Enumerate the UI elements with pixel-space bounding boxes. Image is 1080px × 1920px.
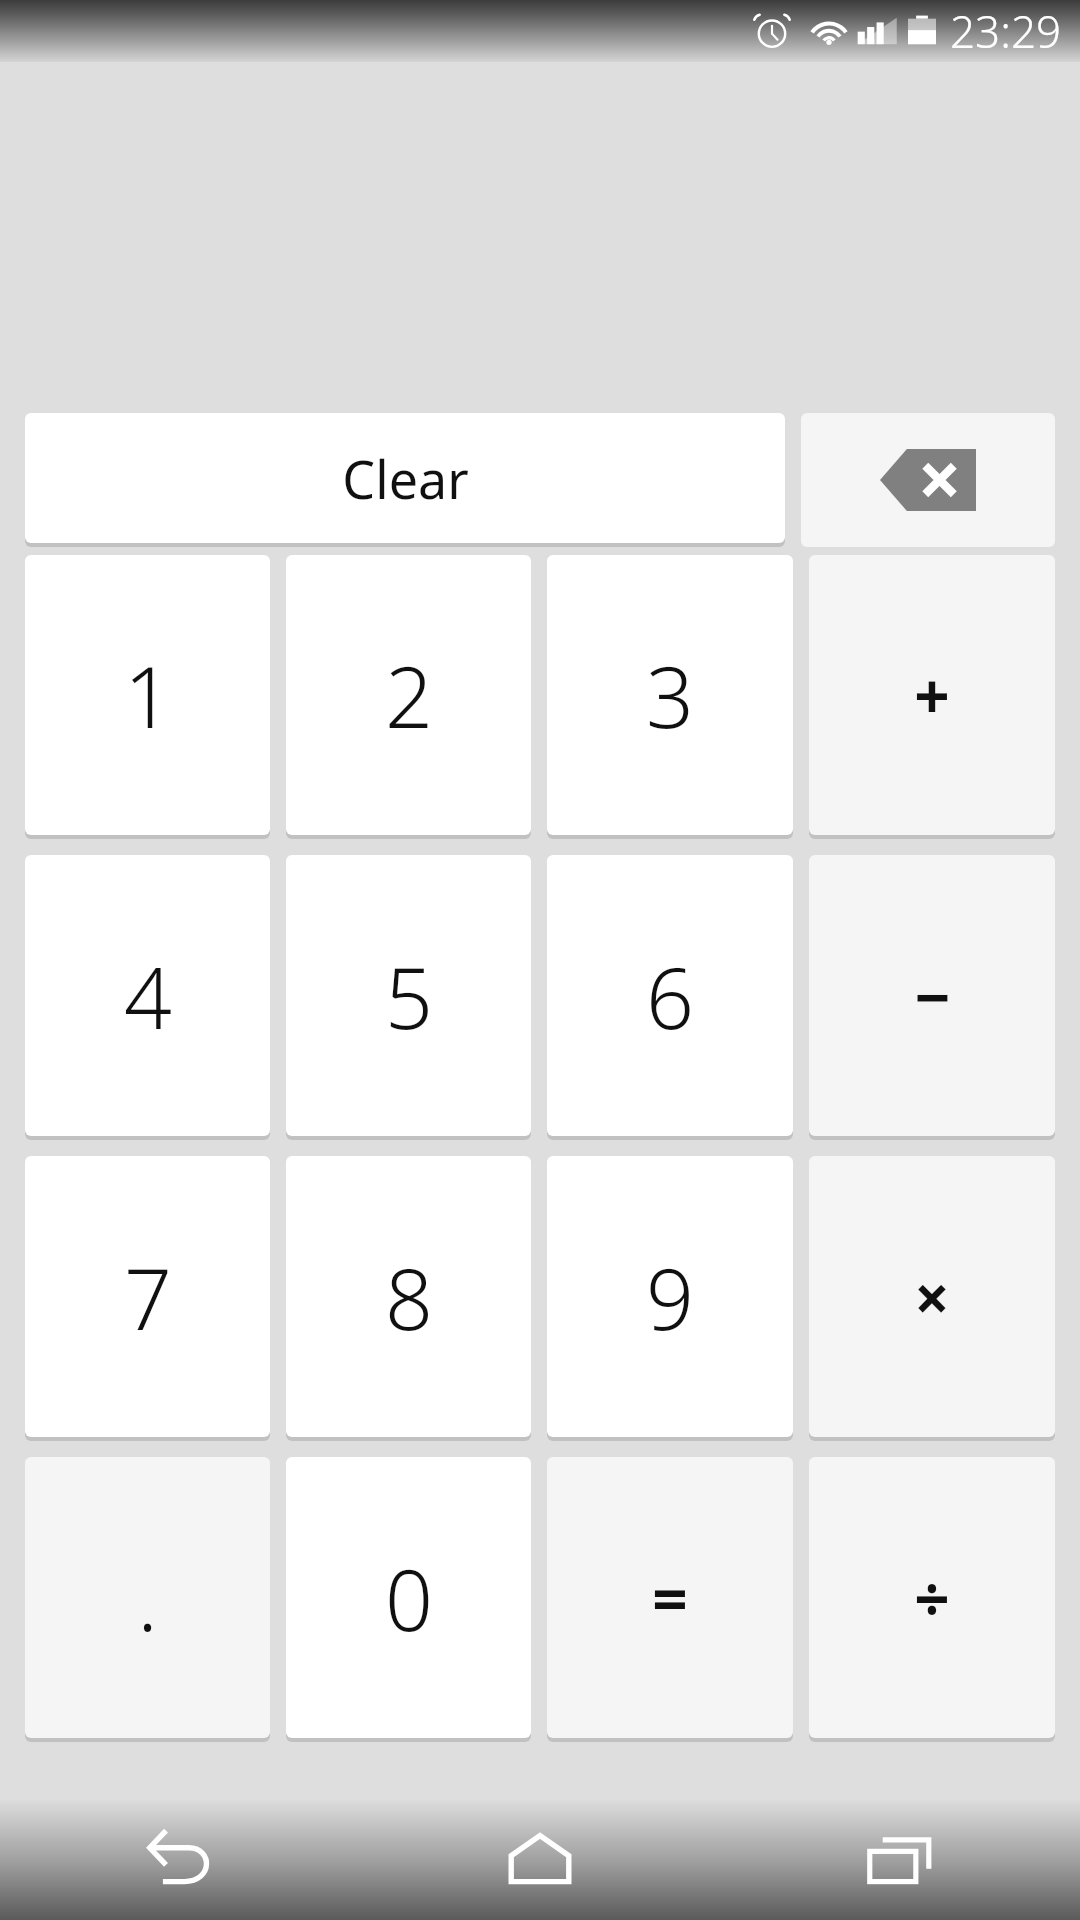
staticText: 5 (385, 939, 433, 1053)
staticText: 9 (646, 1240, 694, 1354)
button[interactable]: + (809, 555, 1055, 835)
button[interactable]: Recent apps (720, 1800, 1080, 1920)
button[interactable]: . (25, 1457, 270, 1738)
button[interactable]: × (809, 1156, 1055, 1437)
staticText: = (652, 1556, 688, 1640)
staticText: 1 (124, 638, 172, 752)
button[interactable]: 5 (286, 855, 531, 1136)
staticText: 8 (385, 1240, 433, 1354)
button[interactable]: Backspace (801, 413, 1055, 547)
staticText: + (914, 653, 950, 737)
button[interactable]: 1 (25, 555, 270, 835)
staticText: . (137, 1541, 158, 1655)
button[interactable]: Back (0, 1800, 360, 1920)
staticText: Clear (342, 443, 469, 514)
button[interactable]: ÷ (809, 1457, 1055, 1738)
button[interactable]: 0 (286, 1457, 531, 1738)
button[interactable]: 7 (25, 1156, 270, 1437)
button[interactable]: Home (360, 1800, 720, 1920)
staticText: 0 (385, 1541, 433, 1655)
button[interactable]: 9 (547, 1156, 793, 1437)
staticText: 6 (646, 939, 694, 1053)
button[interactable]: − (809, 855, 1055, 1136)
staticText: × (914, 1255, 950, 1339)
button[interactable]: 3 (547, 555, 793, 835)
staticText: 23:29 (950, 1, 1062, 61)
staticText: 2 (385, 638, 433, 752)
button[interactable]: 6 (547, 855, 793, 1136)
button[interactable]: 2 (286, 555, 531, 835)
button[interactable]: 4 (25, 855, 270, 1136)
button[interactable]: = (547, 1457, 793, 1738)
staticText: 3 (646, 638, 694, 752)
staticText: 4 (124, 939, 172, 1053)
staticText: − (914, 954, 951, 1038)
button[interactable]: Clear (25, 413, 785, 543)
button[interactable]: 8 (286, 1156, 531, 1437)
staticText: 7 (124, 1240, 172, 1354)
staticText: ÷ (914, 1556, 950, 1640)
